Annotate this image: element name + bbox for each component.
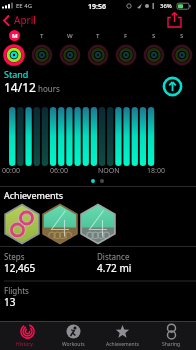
staticText: 14/12 [4,79,36,95]
staticText: April [14,13,36,27]
staticText: 4.72 mi [97,261,132,275]
button[interactable]: S [168,30,196,68]
staticText: Achievements [4,189,64,201]
staticText: 06:00 [50,166,68,176]
button[interactable] [165,11,185,29]
button[interactable] [81,204,116,245]
button[interactable]: T [84,30,112,68]
button[interactable] [162,76,183,97]
staticText: History [16,341,33,348]
staticText: F [124,32,128,40]
button[interactable]: Achievements [98,321,147,350]
button[interactable]: History [0,321,49,350]
button[interactable] [43,204,78,245]
button[interactable]: M [0,30,28,68]
staticText: EE 4G [16,2,33,10]
staticText: S [152,32,156,40]
button[interactable]: S [140,30,168,68]
staticText: Steps [4,251,25,262]
staticText: T [40,32,44,40]
button[interactable]: April [2,13,36,27]
staticText: W [67,32,73,40]
button[interactable]: T [28,30,56,68]
staticText: 18:00 [147,166,165,176]
staticText: T [96,32,100,40]
staticText: Distance [97,251,130,262]
staticText: Achievements [106,341,139,348]
button[interactable]: F [112,30,140,68]
staticText: Workouts [62,341,85,348]
staticText: 19:56 [88,2,106,12]
staticText: S [180,32,184,40]
staticText: NOON [98,166,120,176]
staticText: Stand [4,68,29,80]
button[interactable] [5,204,40,245]
staticText: 13 [4,295,16,309]
button[interactable]: W [56,30,84,68]
staticText: M [12,32,18,40]
button[interactable]: Sharing [147,321,196,350]
staticText: 00:00 [2,166,20,176]
staticText: Flights [4,285,29,296]
staticText: hours [36,83,60,94]
staticText: Sharing [162,341,181,348]
button[interactable]: Workouts [49,321,98,350]
staticText: 36% [160,2,172,10]
staticText: 12,465 [4,261,36,275]
